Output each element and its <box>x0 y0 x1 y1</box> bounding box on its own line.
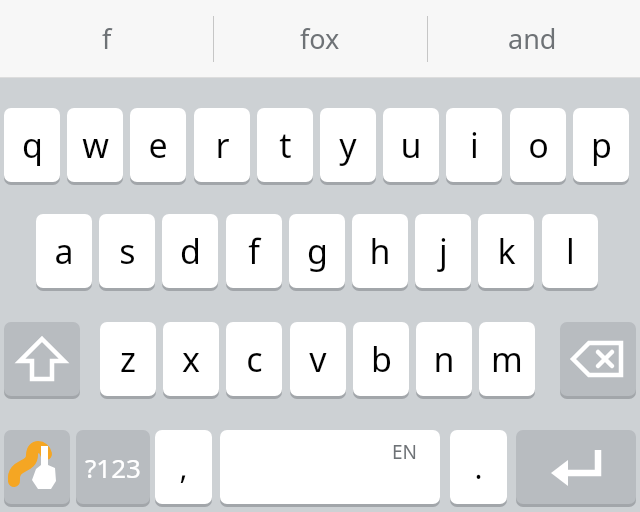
staticText: f <box>102 20 112 57</box>
button[interactable]: and <box>426 0 638 77</box>
staticText: fox <box>300 20 340 57</box>
button[interactable]: k <box>478 214 534 291</box>
staticText: l <box>566 228 575 274</box>
button[interactable]: u <box>383 108 439 185</box>
staticText: and <box>508 20 557 57</box>
staticText: k <box>497 228 516 274</box>
staticText: b <box>371 336 392 382</box>
staticText: x <box>182 336 200 382</box>
staticText: c <box>246 336 263 382</box>
button[interactable]: b <box>353 322 409 399</box>
button[interactable]: q <box>4 108 60 185</box>
staticText: p <box>591 122 612 168</box>
button[interactable]: z <box>100 322 156 399</box>
button[interactable]: p <box>573 108 629 185</box>
staticText: m <box>491 336 523 382</box>
staticText: u <box>400 122 422 168</box>
button[interactable]: f <box>1 0 213 77</box>
staticText: h <box>369 228 391 274</box>
staticText: e <box>148 122 168 168</box>
button[interactable]: Backspace <box>560 322 636 399</box>
staticText: w <box>82 122 109 168</box>
staticText: v <box>309 336 327 382</box>
staticText: j <box>439 228 448 274</box>
button[interactable]: o <box>510 108 566 185</box>
button[interactable]: a <box>36 214 92 291</box>
button[interactable]: Gesture typing <box>4 430 70 507</box>
button[interactable]: y <box>320 108 376 185</box>
button[interactable]: f <box>226 214 282 291</box>
staticText: d <box>180 228 201 274</box>
button[interactable]: s <box>99 214 155 291</box>
staticText: g <box>307 228 328 274</box>
button[interactable]: t <box>257 108 313 185</box>
staticText: q <box>22 122 43 168</box>
staticText: o <box>528 122 549 168</box>
button[interactable]: x <box>163 322 219 399</box>
staticText: f <box>248 228 260 274</box>
button[interactable]: n <box>416 322 472 399</box>
button[interactable]: fox <box>214 0 426 77</box>
staticText: n <box>433 336 455 382</box>
staticText: EN <box>392 439 418 465</box>
staticText: . <box>474 447 483 488</box>
button[interactable]: v <box>290 322 346 399</box>
button[interactable]: Shift <box>4 322 80 399</box>
staticText: , <box>179 447 188 488</box>
staticText: r <box>215 122 230 168</box>
staticText: t <box>279 122 292 168</box>
button[interactable]: Enter <box>516 430 636 507</box>
button[interactable]: d <box>162 214 218 291</box>
staticText: z <box>120 336 136 382</box>
button[interactable]: l <box>542 214 598 291</box>
button[interactable]: i <box>446 108 502 185</box>
button[interactable]: Space <box>220 430 440 507</box>
staticText: s <box>119 228 136 274</box>
button[interactable]: ?123 <box>76 430 150 507</box>
staticText: ?123 <box>85 450 141 485</box>
button[interactable]: j <box>415 214 471 291</box>
staticText: i <box>470 122 479 168</box>
button[interactable]: c <box>226 322 282 399</box>
button[interactable]: e <box>130 108 186 185</box>
button[interactable]: r <box>194 108 250 185</box>
button[interactable]: h <box>352 214 408 291</box>
button[interactable]: , <box>155 430 212 507</box>
button[interactable]: m <box>479 322 535 399</box>
staticText: a <box>54 228 74 274</box>
staticText: y <box>339 122 357 168</box>
button[interactable]: g <box>289 214 345 291</box>
button[interactable]: . <box>450 430 507 507</box>
button[interactable]: w <box>67 108 123 185</box>
